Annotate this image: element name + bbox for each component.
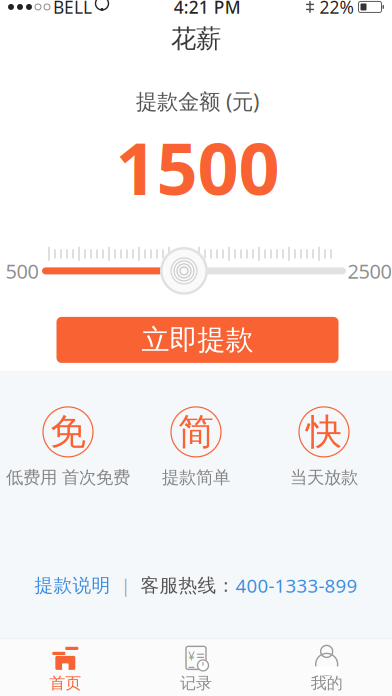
staticText: 低费用 首次免费 [6, 467, 130, 488]
button[interactable]: 提款说明 [34, 574, 110, 597]
staticText: 我的 [311, 673, 343, 693]
staticText: BELL [53, 0, 92, 18]
staticText: 简 [178, 410, 214, 454]
staticText: 1500 [115, 119, 279, 215]
staticText: 记录 [180, 673, 212, 693]
staticText: 2500 [347, 258, 391, 284]
staticText: 22% [319, 0, 353, 18]
staticText: 提款说明 [34, 574, 110, 597]
staticText: ¥ [188, 648, 195, 664]
button[interactable]: 立即提款 [56, 317, 338, 363]
staticText: 立即提款 [141, 323, 253, 357]
staticText: 提款简单 [162, 467, 230, 488]
staticText: 客服热线： [140, 574, 235, 597]
staticText: 提款金额 (元) [136, 87, 259, 115]
button[interactable]: ¥ [131, 638, 261, 696]
button[interactable]: 我的 [261, 638, 392, 696]
staticText: 花薪 [171, 23, 221, 54]
button[interactable]: 400-1333-899 [235, 573, 357, 598]
button[interactable]: 首页 [0, 638, 131, 696]
staticText: 4:21 PM [174, 0, 241, 18]
staticText: 400-1333-899 [235, 573, 357, 598]
staticText: 快 [306, 410, 342, 454]
staticText: 500 [5, 258, 38, 284]
staticText: 免 [50, 410, 86, 454]
staticText: 首页 [49, 673, 81, 693]
staticText: 当天放款 [290, 467, 358, 488]
staticText: | [110, 573, 140, 598]
